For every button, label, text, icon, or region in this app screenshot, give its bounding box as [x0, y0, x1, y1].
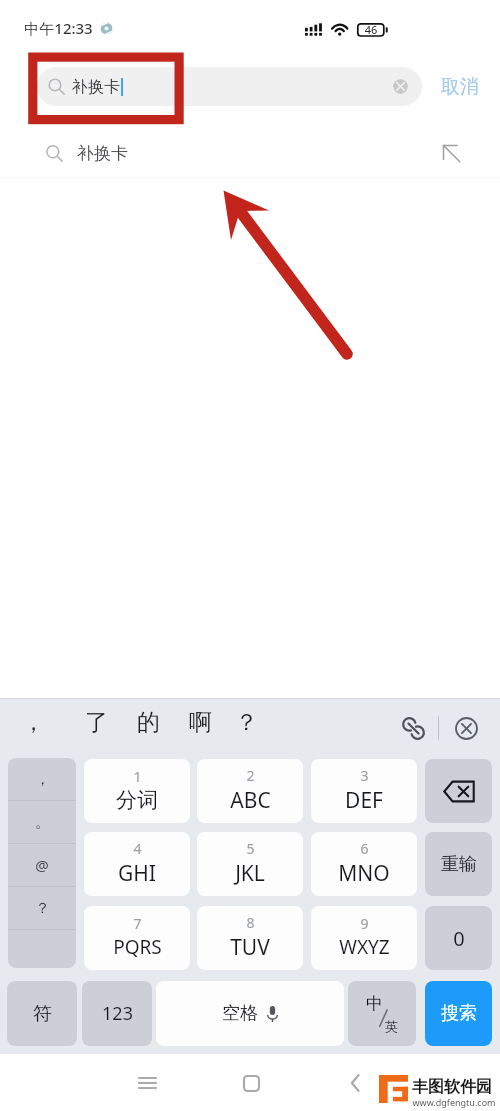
staticText: ABC [230, 786, 271, 815]
button[interactable]: 啊 [184, 698, 216, 746]
staticText: JKL [235, 859, 265, 888]
staticText: 中午12:33 [24, 18, 93, 38]
staticText: WXYZ [339, 934, 390, 960]
button[interactable]: 7 [84, 906, 190, 970]
staticText: 中 [366, 993, 383, 1014]
button[interactable]: ， [8, 758, 76, 800]
button[interactable]: Backspace [425, 759, 492, 823]
staticText: 补换卡 [77, 143, 128, 164]
staticText: 6 [360, 839, 369, 858]
button[interactable]: @ [8, 844, 76, 886]
button[interactable]: 9 [311, 906, 417, 970]
button[interactable]: 符 [7, 981, 77, 1046]
staticText: 123 [102, 1001, 133, 1026]
button[interactable]: Hide keyboard [450, 712, 482, 744]
button[interactable]: Recent apps [125, 1061, 169, 1105]
staticText: www.dgfengtu.com [412, 1096, 496, 1108]
staticText: 搜索 [441, 1002, 477, 1025]
button[interactable]: 0 [425, 906, 492, 970]
staticText: 的 [137, 708, 160, 737]
button[interactable]: Clear text [393, 79, 408, 94]
button[interactable]: 重输 [425, 832, 492, 896]
staticText: 0 [453, 925, 465, 952]
staticText: 2 [246, 766, 255, 785]
button[interactable]: 取消 [435, 67, 485, 106]
button[interactable]: 123 [82, 981, 152, 1046]
staticText: ？ [235, 708, 258, 737]
button[interactable]: 补换卡 [0, 130, 500, 176]
staticText: 1 [133, 767, 142, 786]
button[interactable]: 3 [311, 759, 417, 823]
button[interactable]: Clipboard [397, 712, 429, 744]
staticText: 了 [85, 708, 108, 737]
button[interactable]: ， [17, 698, 49, 746]
button[interactable]: Switch Chinese English [348, 981, 416, 1046]
staticText: 分词 [116, 787, 158, 813]
button[interactable]: Back [333, 1061, 377, 1105]
staticText: 重输 [441, 853, 477, 876]
staticText: 取消 [441, 75, 479, 98]
staticText: MNO [338, 859, 390, 888]
staticText: ， [35, 770, 50, 789]
button[interactable]: Home [229, 1061, 273, 1105]
staticText: 3 [360, 766, 369, 785]
staticText: 补换卡 [72, 77, 120, 97]
staticText: ， [22, 708, 45, 737]
staticText: 9 [360, 914, 369, 933]
staticText: DEF [345, 786, 383, 815]
staticText: ？ [35, 899, 50, 918]
staticText: 46 [364, 22, 378, 37]
staticText: 。 [35, 813, 50, 832]
button[interactable]: 搜索 [425, 981, 492, 1046]
staticText: GHI [118, 859, 156, 888]
staticText: 4 [133, 839, 142, 858]
staticText: 空格 [222, 1002, 258, 1025]
button[interactable]: 。 [8, 801, 76, 843]
button[interactable]: 空格 [156, 981, 344, 1046]
staticText: @ [35, 855, 49, 875]
staticText: 7 [133, 914, 142, 933]
button[interactable]: 1 [84, 759, 190, 823]
button[interactable]: Use this suggestion [440, 142, 462, 164]
button[interactable]: 补换卡 [37, 67, 422, 106]
staticText: 啊 [189, 708, 212, 737]
staticText: TUV [230, 933, 270, 962]
staticText: 5 [246, 839, 255, 858]
button[interactable]: 8 [197, 906, 303, 970]
button[interactable]: 4 [84, 832, 190, 896]
button[interactable]: ？ [230, 698, 262, 746]
staticText: 英 [385, 1018, 398, 1034]
staticText: 符 [33, 1002, 52, 1026]
staticText: PQRS [113, 934, 162, 960]
staticText: 8 [246, 913, 255, 932]
button[interactable]: ？ [8, 887, 76, 929]
button[interactable]: 的 [132, 698, 164, 746]
button[interactable]: 6 [311, 832, 417, 896]
button[interactable]: 2 [197, 759, 303, 823]
button[interactable]: 了 [80, 698, 112, 746]
button[interactable]: 5 [197, 832, 303, 896]
staticText: 丰图软件园 [412, 1077, 492, 1097]
